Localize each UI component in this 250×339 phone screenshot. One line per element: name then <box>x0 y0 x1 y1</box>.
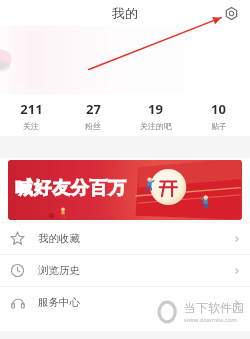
staticText: 贴子 <box>211 121 227 131</box>
button[interactable]: 19 <box>124 94 187 136</box>
button[interactable]: Settings <box>220 2 242 24</box>
button[interactable]: 喊好友分百万 <box>8 160 242 220</box>
staticText: 服务中心 <box>38 296 80 309</box>
staticText: 我的 <box>112 5 138 21</box>
staticText: 27 <box>86 100 101 118</box>
button[interactable]: 服务中心 <box>0 287 250 318</box>
staticText: 19 <box>148 100 163 118</box>
button[interactable]: 我的收藏 <box>0 223 250 254</box>
button[interactable]: 10 <box>187 94 250 136</box>
button[interactable]: 浏览历史 <box>0 255 250 286</box>
staticText: 关注 <box>23 121 39 131</box>
staticText: 关注的吧 <box>140 121 172 131</box>
button[interactable]: 211 <box>0 94 62 136</box>
button[interactable]: 27 <box>62 94 124 136</box>
staticText: 211 <box>20 100 43 118</box>
staticText: www.downxia.com <box>184 316 237 324</box>
staticText: 我的收藏 <box>38 232 80 245</box>
staticText: 粉丝 <box>85 121 101 131</box>
staticText: 10 <box>211 100 226 118</box>
staticText: 当下软件园 <box>184 300 244 315</box>
staticText: 浏览历史 <box>38 264 80 277</box>
staticText: 喊好友分百万 <box>15 177 127 200</box>
